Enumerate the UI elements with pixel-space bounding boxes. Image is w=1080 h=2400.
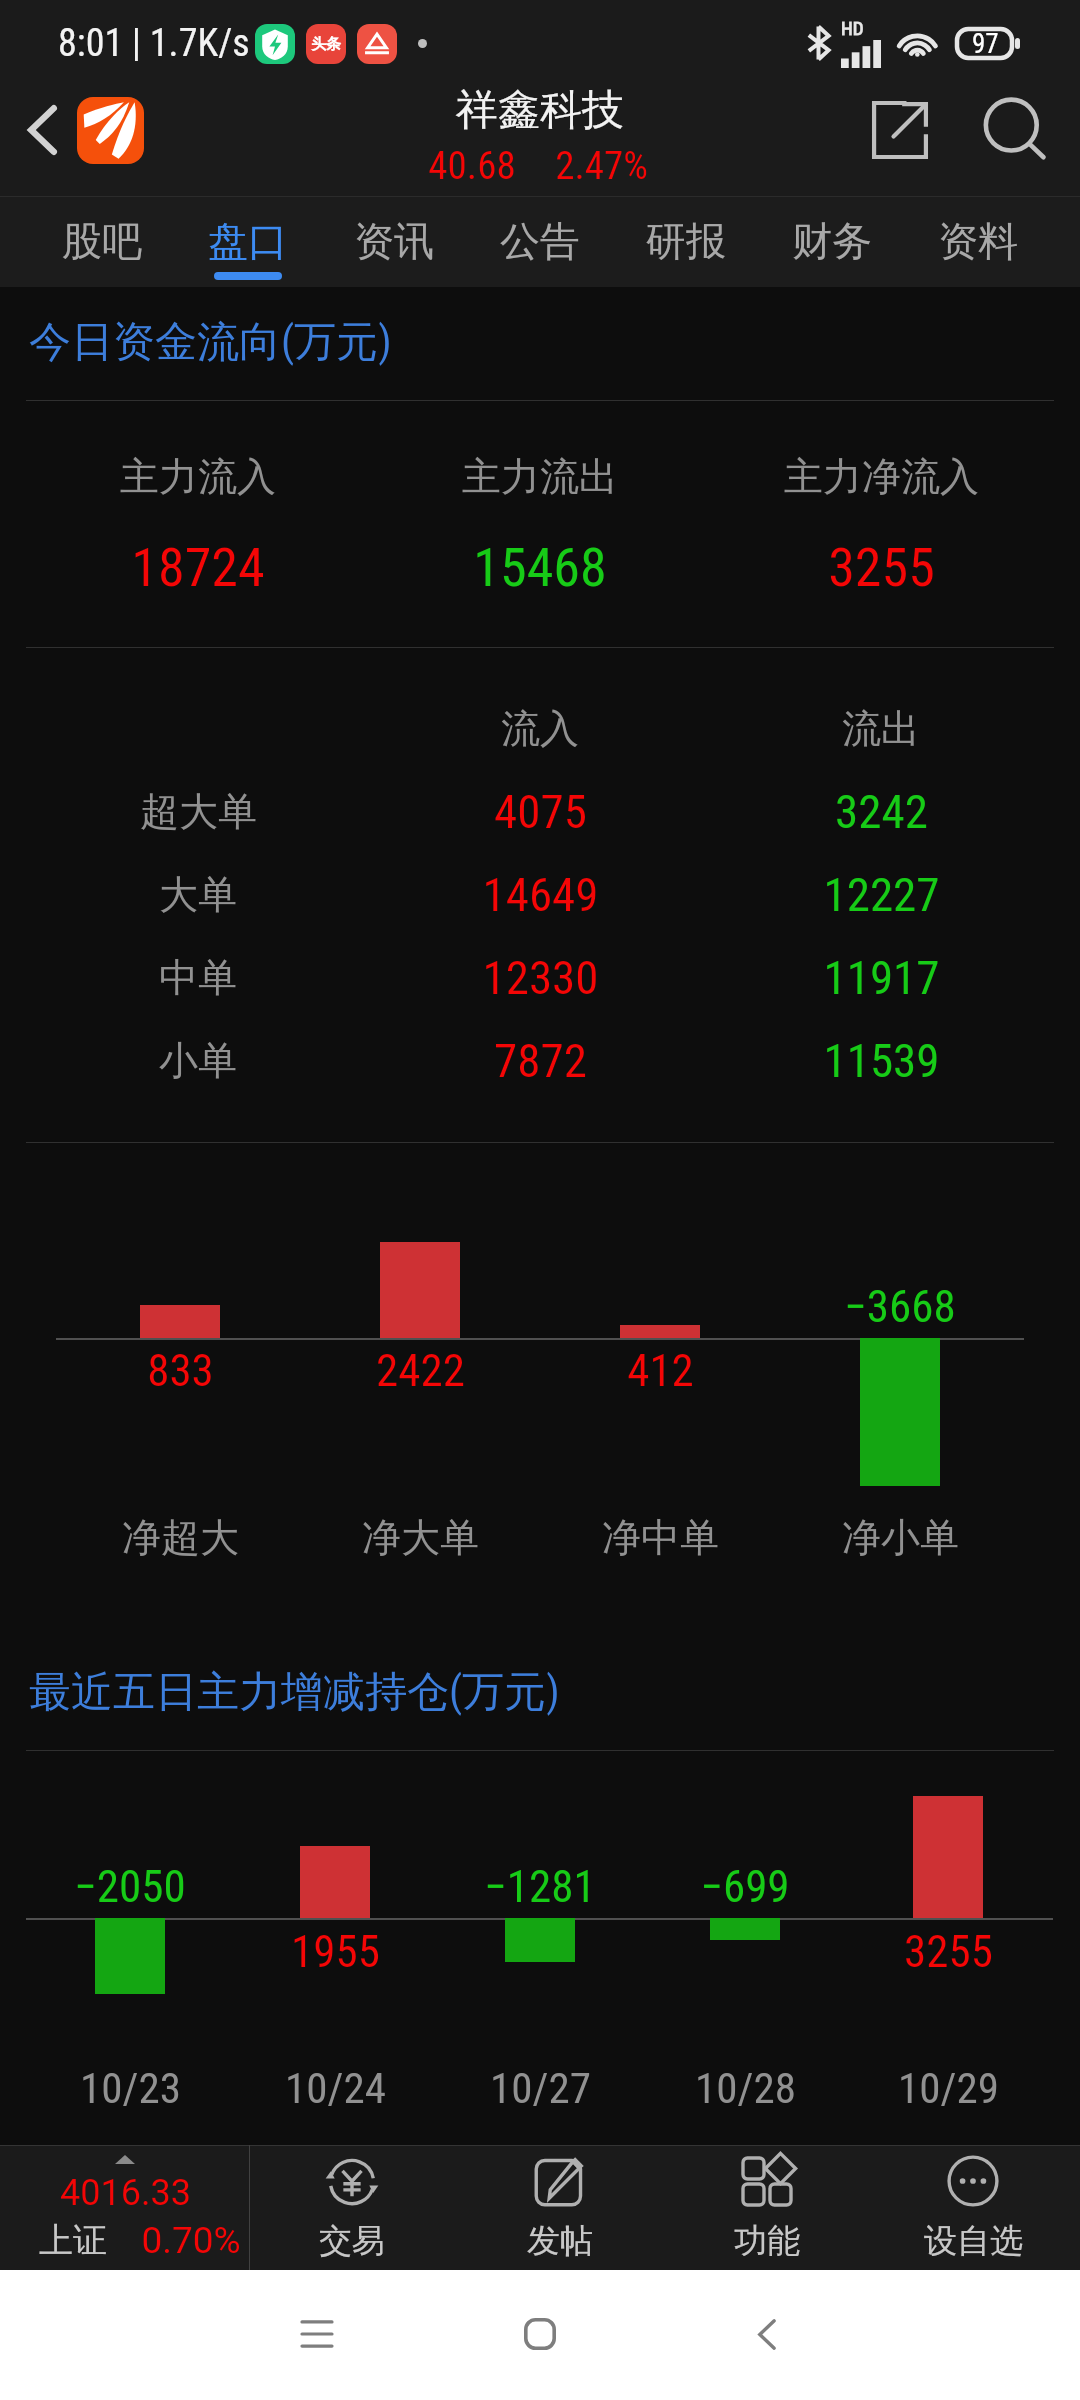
staticText: 14649	[482, 867, 599, 922]
staticText: 10/29	[898, 2063, 999, 2113]
staticText: 4016.33	[60, 2172, 191, 2214]
staticText: 主力流出	[462, 452, 618, 501]
staticText: 最近五日主力增减持仓(万元)	[29, 1666, 560, 1719]
staticText: 10/27	[490, 2063, 591, 2113]
staticText: 18724	[131, 536, 265, 599]
staticText: −2050	[74, 1860, 186, 1913]
button[interactable]: 资料	[905, 196, 1051, 287]
staticText: −3668	[844, 1280, 956, 1333]
button[interactable]: 设自选	[873, 2145, 1073, 2270]
staticText: 97	[972, 28, 999, 60]
staticText: HD	[841, 17, 864, 39]
button[interactable]: 盘口	[175, 196, 321, 287]
button[interactable]: 股吧	[29, 196, 175, 287]
staticText: 412	[627, 1344, 694, 1397]
button[interactable]: 资讯	[321, 196, 467, 287]
staticText: 祥鑫科技	[456, 84, 624, 137]
staticText: 流入	[501, 704, 579, 753]
button[interactable]: Home	[490, 2284, 590, 2384]
staticText: 流出	[842, 704, 920, 753]
staticText: 净中单	[602, 1513, 719, 1562]
button[interactable]: Share	[850, 80, 950, 180]
staticText: −1281	[484, 1860, 596, 1913]
staticText: 头条	[311, 35, 341, 54]
button[interactable]: 公告	[467, 196, 613, 287]
staticText: 主力流入	[120, 452, 276, 501]
button[interactable]: Back	[2, 90, 82, 170]
staticText: 股吧	[62, 216, 142, 266]
staticText: 11539	[823, 1033, 940, 1088]
button[interactable]: 功能	[667, 2145, 867, 2270]
staticText: 2422	[376, 1344, 465, 1397]
staticText: 今日资金流向(万元)	[29, 316, 392, 369]
staticText: 研报	[646, 216, 726, 266]
staticText: 1955	[291, 1925, 380, 1978]
button[interactable]: Search	[965, 80, 1065, 180]
staticText: 资料	[938, 216, 1018, 266]
staticText: 15468	[473, 536, 607, 599]
staticText: 资讯	[354, 216, 434, 266]
staticText: 11917	[823, 950, 940, 1005]
staticText: 3242	[835, 784, 928, 839]
staticText: 小单	[159, 1036, 237, 1085]
staticText: 中单	[159, 953, 237, 1002]
staticText: 功能	[734, 2220, 800, 2262]
staticText: 主力净流入	[784, 452, 979, 501]
staticText: 净小单	[842, 1513, 959, 1562]
staticText: 10/24	[285, 2063, 386, 2113]
staticText: 3255	[904, 1925, 993, 1978]
button[interactable]: 4016.33	[0, 2145, 250, 2270]
button[interactable]: 发帖	[460, 2145, 660, 2270]
staticText: −699	[700, 1860, 790, 1913]
button[interactable]: Recent apps	[267, 2284, 367, 2384]
button[interactable]: App home	[77, 97, 144, 164]
staticText: 3255	[828, 536, 935, 599]
staticText: 超大单	[140, 787, 257, 836]
staticText: 设自选	[924, 2220, 1023, 2262]
staticText: 40.68	[428, 143, 516, 189]
staticText: 2.47%	[555, 143, 648, 189]
staticText: 净大单	[362, 1513, 479, 1562]
staticText: 12330	[482, 950, 599, 1005]
staticText: 交易	[319, 2220, 385, 2262]
button[interactable]: Back	[717, 2284, 817, 2384]
staticText: 公告	[500, 216, 580, 266]
staticText: 12227	[823, 867, 940, 922]
staticText: 净超大	[122, 1513, 239, 1562]
staticText: 4075	[494, 784, 587, 839]
staticText: 财务	[792, 216, 872, 266]
staticText: 0.70%	[141, 2219, 241, 2262]
staticText: 10/23	[80, 2063, 181, 2113]
staticText: 10/28	[695, 2063, 796, 2113]
staticText: 8:01 | 1.7K/s	[58, 21, 250, 66]
staticText: 833	[147, 1344, 214, 1397]
staticText: 大单	[159, 870, 237, 919]
button[interactable]: 财务	[759, 196, 905, 287]
staticText: 发帖	[527, 2220, 593, 2262]
staticText: 7872	[494, 1033, 587, 1088]
staticText: 盘口	[208, 216, 288, 266]
button[interactable]: 研报	[613, 196, 759, 287]
staticText: 上证	[39, 2219, 107, 2262]
button[interactable]: 交易	[252, 2145, 452, 2270]
